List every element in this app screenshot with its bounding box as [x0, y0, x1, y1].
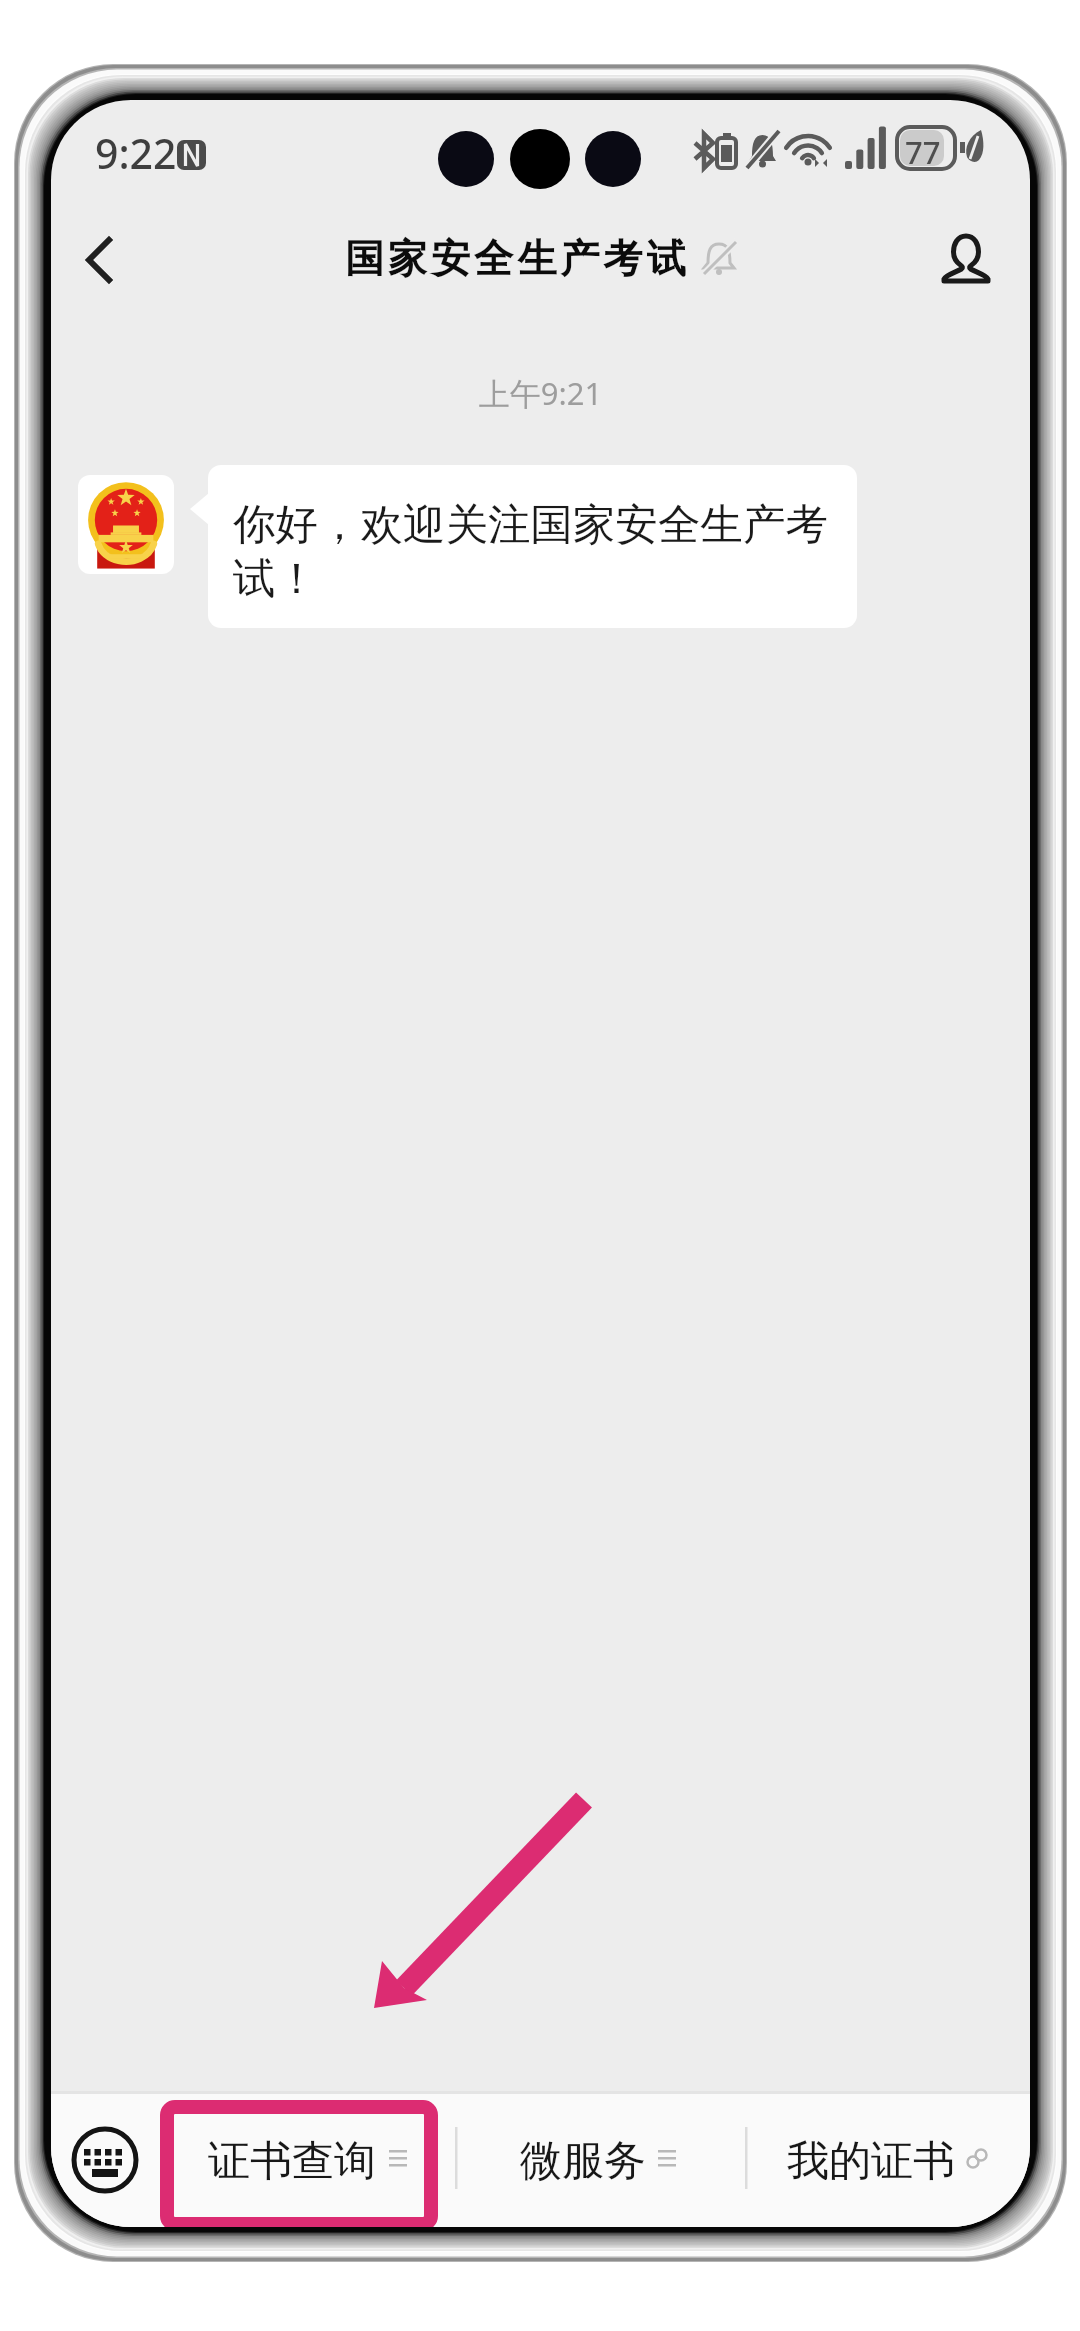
- staticText: 9:22: [95, 125, 177, 181]
- button[interactable]: 微服务: [520, 2127, 728, 2199]
- staticText: 试！: [233, 552, 318, 606]
- button[interactable]: Keyboard: [72, 2127, 138, 2193]
- staticText: 77: [905, 131, 941, 173]
- button[interactable]: Back: [51, 212, 147, 308]
- staticText: 我的证书: [787, 2135, 955, 2188]
- button[interactable]: 证书查询: [208, 2127, 456, 2199]
- staticText: 国家安全生产考试: [345, 234, 690, 283]
- staticText: 证书查询: [208, 2135, 376, 2188]
- staticText: 微服务: [520, 2135, 646, 2188]
- staticText: 上午9:21: [51, 372, 1030, 414]
- button[interactable]: 我的证书: [787, 2127, 1030, 2199]
- staticText: 你好，欢迎关注国家安全生产考: [233, 498, 828, 552]
- button[interactable]: Profile: [913, 205, 1019, 311]
